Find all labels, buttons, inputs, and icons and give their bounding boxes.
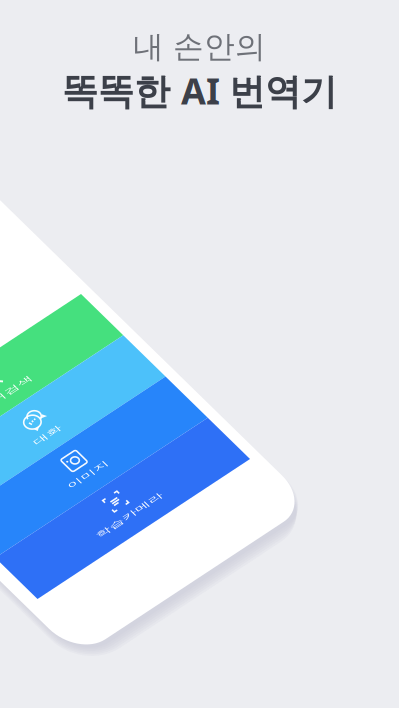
staticText: 이미지	[153, 433, 222, 461]
staticText: 학습카메라	[130, 597, 245, 625]
staticText: 내 손안의	[133, 28, 266, 66]
staticText: 똑똑한 AI 번역기	[62, 67, 337, 114]
staticText: 단어검색	[141, 107, 233, 135]
